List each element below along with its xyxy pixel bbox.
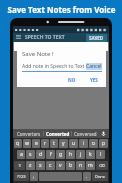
button[interactable]: Voice input [99,129,107,138]
staticText: Cancel [86,63,102,70]
staticText: . [86,173,88,180]
staticText: v [59,162,62,169]
staticText: NO [68,77,76,83]
button[interactable]: v [56,161,65,170]
button[interactable]: b [66,161,75,170]
button[interactable]: i [79,139,88,148]
staticText: c [49,162,52,169]
button[interactable]: n [76,161,85,170]
button[interactable]: SAVED [86,34,107,42]
button[interactable]: u [69,139,78,148]
button[interactable]: Menu [15,34,22,41]
staticText: x [39,162,42,169]
staticText: g [59,151,63,158]
staticText: i [83,140,85,147]
staticText: Done [95,174,106,179]
button[interactable]: f [46,150,55,159]
button[interactable]: . [83,172,91,181]
staticText: d [39,151,43,158]
staticText: y [62,140,65,147]
staticText: Add note in Speech to Text [22,63,86,70]
button[interactable]: Backspace [96,161,108,170]
button[interactable]: Symbols [14,172,29,181]
staticText: ⌫ [99,163,105,168]
button[interactable]: z [26,161,35,170]
staticText: YES [90,77,98,83]
button[interactable]: t [50,139,58,148]
staticText: ⇧ [18,163,22,168]
staticText: j [80,151,82,158]
button[interactable]: x [36,161,45,170]
button[interactable]: Converted [44,131,71,137]
button[interactable]: m [86,161,95,170]
staticText: h [69,151,73,158]
staticText: l [100,151,102,158]
button[interactable]: y [59,139,68,148]
staticText: m [88,162,93,169]
button[interactable]: e [32,139,40,148]
button[interactable]: k [86,150,95,159]
button[interactable]: NO [64,76,80,84]
staticText: o [92,140,96,147]
staticText: Converters [17,131,41,137]
staticText: Converted [46,131,70,137]
staticText: SAVED [89,35,104,41]
staticText: z [29,162,32,169]
button[interactable]: a [17,150,25,159]
staticText: a [20,151,23,158]
staticText: w [25,140,29,147]
button[interactable]: Conversed [72,131,99,137]
button[interactable]: YES [86,76,102,84]
button[interactable]: r [41,139,49,148]
staticText: , [33,173,35,180]
staticText: k [89,151,92,158]
button[interactable]: d [36,150,45,159]
button[interactable]: h [66,150,75,159]
staticText: ?123 [17,174,26,179]
staticText: q [16,140,20,147]
button[interactable]: l [96,150,105,159]
staticText: b [69,162,73,169]
staticText: e [35,140,38,147]
button[interactable]: p [99,139,108,148]
staticText: p [102,140,106,147]
staticText: Save Text Notes from Voice [7,4,116,15]
button[interactable]: w [23,139,31,148]
staticText: u [72,140,76,147]
staticText: s [29,151,32,158]
staticText: Save Note ! [22,50,54,58]
staticText: Conversed [74,131,97,137]
staticText: t [53,140,55,147]
button[interactable]: q [14,139,22,148]
staticText: f [50,151,52,158]
button[interactable]: s [26,150,35,159]
button[interactable]: , [30,172,38,181]
staticText: n [79,162,83,169]
button[interactable]: Done [92,172,108,181]
button[interactable]: g [56,150,65,159]
staticText: r [44,140,47,147]
staticText: SPEECH TO TEXT [25,34,65,41]
button[interactable]: o [89,139,98,148]
button[interactable]: j [76,150,85,159]
button[interactable]: Converters [15,131,43,137]
button[interactable]: c [46,161,55,170]
button[interactable]: Shift [14,161,25,170]
